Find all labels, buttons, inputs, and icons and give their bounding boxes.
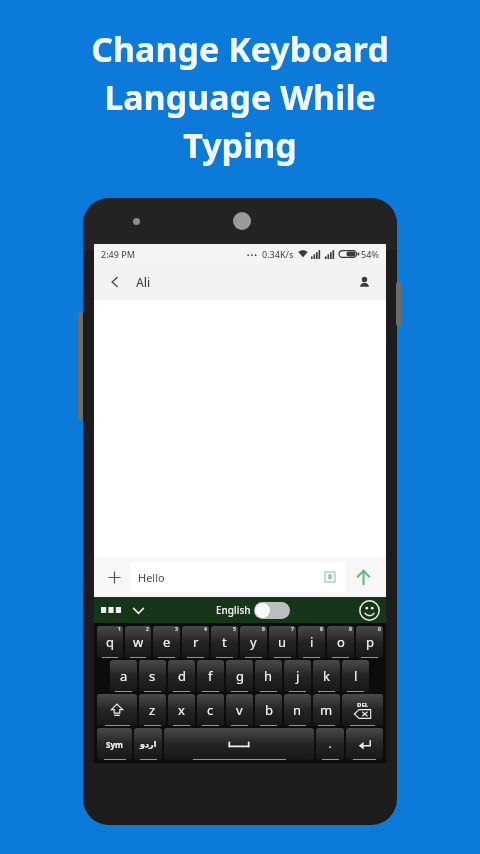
button[interactable]: s [139,660,166,692]
button[interactable]: Sticker [318,565,342,589]
button[interactable]: Hello [130,562,346,592]
button[interactable]: f [197,660,224,692]
staticText: m [320,701,333,719]
staticText: Ali [136,274,151,290]
staticText: 4 [204,626,207,633]
staticText: 9 [349,626,352,633]
staticText: y [250,633,257,651]
button[interactable]: Enter [346,728,383,760]
staticText: 3 [175,626,178,633]
staticText: 8 [320,626,323,633]
staticText: r [193,633,199,651]
staticText: Hello [138,570,165,585]
button[interactable]: Attach [100,563,128,591]
button[interactable]: k [313,660,340,692]
button[interactable]: z [139,694,166,726]
button[interactable]: p [356,626,383,658]
staticText: 0.34K/s [262,248,294,260]
staticText: 1 [118,626,121,633]
button[interactable]: a [110,660,137,692]
button[interactable]: g [226,660,253,692]
staticText: 7 [291,626,294,633]
staticText: q [106,633,114,651]
button[interactable]: l [342,660,369,692]
button[interactable]: Contact [352,270,376,294]
staticText: . [329,739,332,750]
staticText: DEL [357,701,369,709]
button[interactable]: اردو [134,728,162,760]
button[interactable]: x [168,694,195,726]
staticText: x [178,701,185,719]
staticText: o [337,633,345,651]
button[interactable]: v [226,694,253,726]
staticText: c [207,701,214,719]
staticText: l [354,667,358,685]
staticText: e [163,633,171,651]
staticText: j [296,667,300,685]
button[interactable]: w [125,626,151,658]
staticText: Language While [104,74,376,120]
staticText: s [149,667,156,685]
staticText: u [278,633,287,651]
staticText: h [264,667,273,685]
button[interactable]: d [168,660,195,692]
staticText: i [310,633,314,651]
staticText: w [133,633,144,651]
staticText: n [293,701,302,719]
button[interactable]: Hide keyboard [127,599,149,621]
staticText: 5 [233,626,236,633]
button[interactable]: m [313,694,340,726]
staticText: f [208,667,213,685]
staticText: g [236,667,244,685]
staticText: d [178,667,186,685]
button[interactable]: c [197,694,224,726]
button[interactable]: i [298,626,325,658]
staticText: Change Keyboard [91,26,389,72]
staticText: b [265,701,273,719]
button[interactable]: u [269,626,296,658]
staticText: 0 [378,626,381,633]
button[interactable]: Shift [97,694,137,726]
button[interactable]: o [327,626,354,658]
button[interactable]: h [255,660,282,692]
staticText: v [236,701,243,719]
staticText: 54% [361,248,379,260]
staticText: t [222,633,227,651]
staticText: اردو [140,740,157,749]
staticText: z [149,701,156,719]
staticText: 2 [146,626,149,633]
button[interactable]: Menu [99,600,123,620]
staticText: p [366,633,374,651]
button[interactable]: b [255,694,282,726]
staticText: Typing [183,122,297,168]
staticText: k [323,667,330,685]
button[interactable]: Back [104,271,126,293]
button[interactable]: y [240,626,267,658]
button[interactable]: Language toggle [254,602,290,619]
button[interactable]: Delete [342,694,383,726]
button[interactable]: t [211,626,238,658]
staticText: 6 [262,626,265,633]
button[interactable]: r [182,626,209,658]
button[interactable]: Emoji [357,598,381,622]
button[interactable]: n [284,694,311,726]
button[interactable]: q [97,626,123,658]
button[interactable]: e [153,626,180,658]
staticText: English [216,603,251,617]
button[interactable]: j [284,660,311,692]
button[interactable]: Send [346,560,380,594]
staticText: a [120,667,128,685]
button[interactable]: Sym [97,728,132,760]
staticText: 2:49 PM [101,248,135,260]
staticText: Sym [106,739,123,750]
button[interactable]: . [316,728,344,760]
button[interactable]: Space [164,728,314,760]
